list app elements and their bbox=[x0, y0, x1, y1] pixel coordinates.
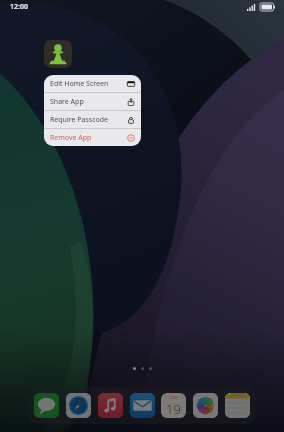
staticText: Edit Home Screen bbox=[50, 79, 127, 89]
button[interactable]: Safari bbox=[66, 393, 91, 418]
staticText: 12:00 bbox=[10, 2, 28, 12]
button[interactable]: Share App bbox=[44, 93, 141, 110]
button[interactable]: Notes bbox=[225, 393, 250, 418]
button[interactable]: Edit Home Screen bbox=[44, 75, 141, 92]
button[interactable]: Music bbox=[98, 393, 123, 418]
button[interactable]: Calendar bbox=[161, 393, 186, 418]
staticText: TUE bbox=[170, 395, 178, 400]
staticText: Remove App bbox=[50, 133, 127, 143]
staticText: Require Passcode bbox=[50, 115, 127, 125]
button[interactable]: Remove App bbox=[44, 129, 141, 146]
button[interactable]: Messages bbox=[34, 393, 59, 418]
button[interactable]: Photos bbox=[193, 393, 218, 418]
staticText: 19 bbox=[166, 400, 181, 418]
button[interactable]: Chess app icon bbox=[44, 40, 72, 68]
button[interactable]: Mail bbox=[130, 393, 155, 418]
staticText: Share App bbox=[50, 97, 127, 107]
button[interactable]: Require Passcode bbox=[44, 111, 141, 128]
